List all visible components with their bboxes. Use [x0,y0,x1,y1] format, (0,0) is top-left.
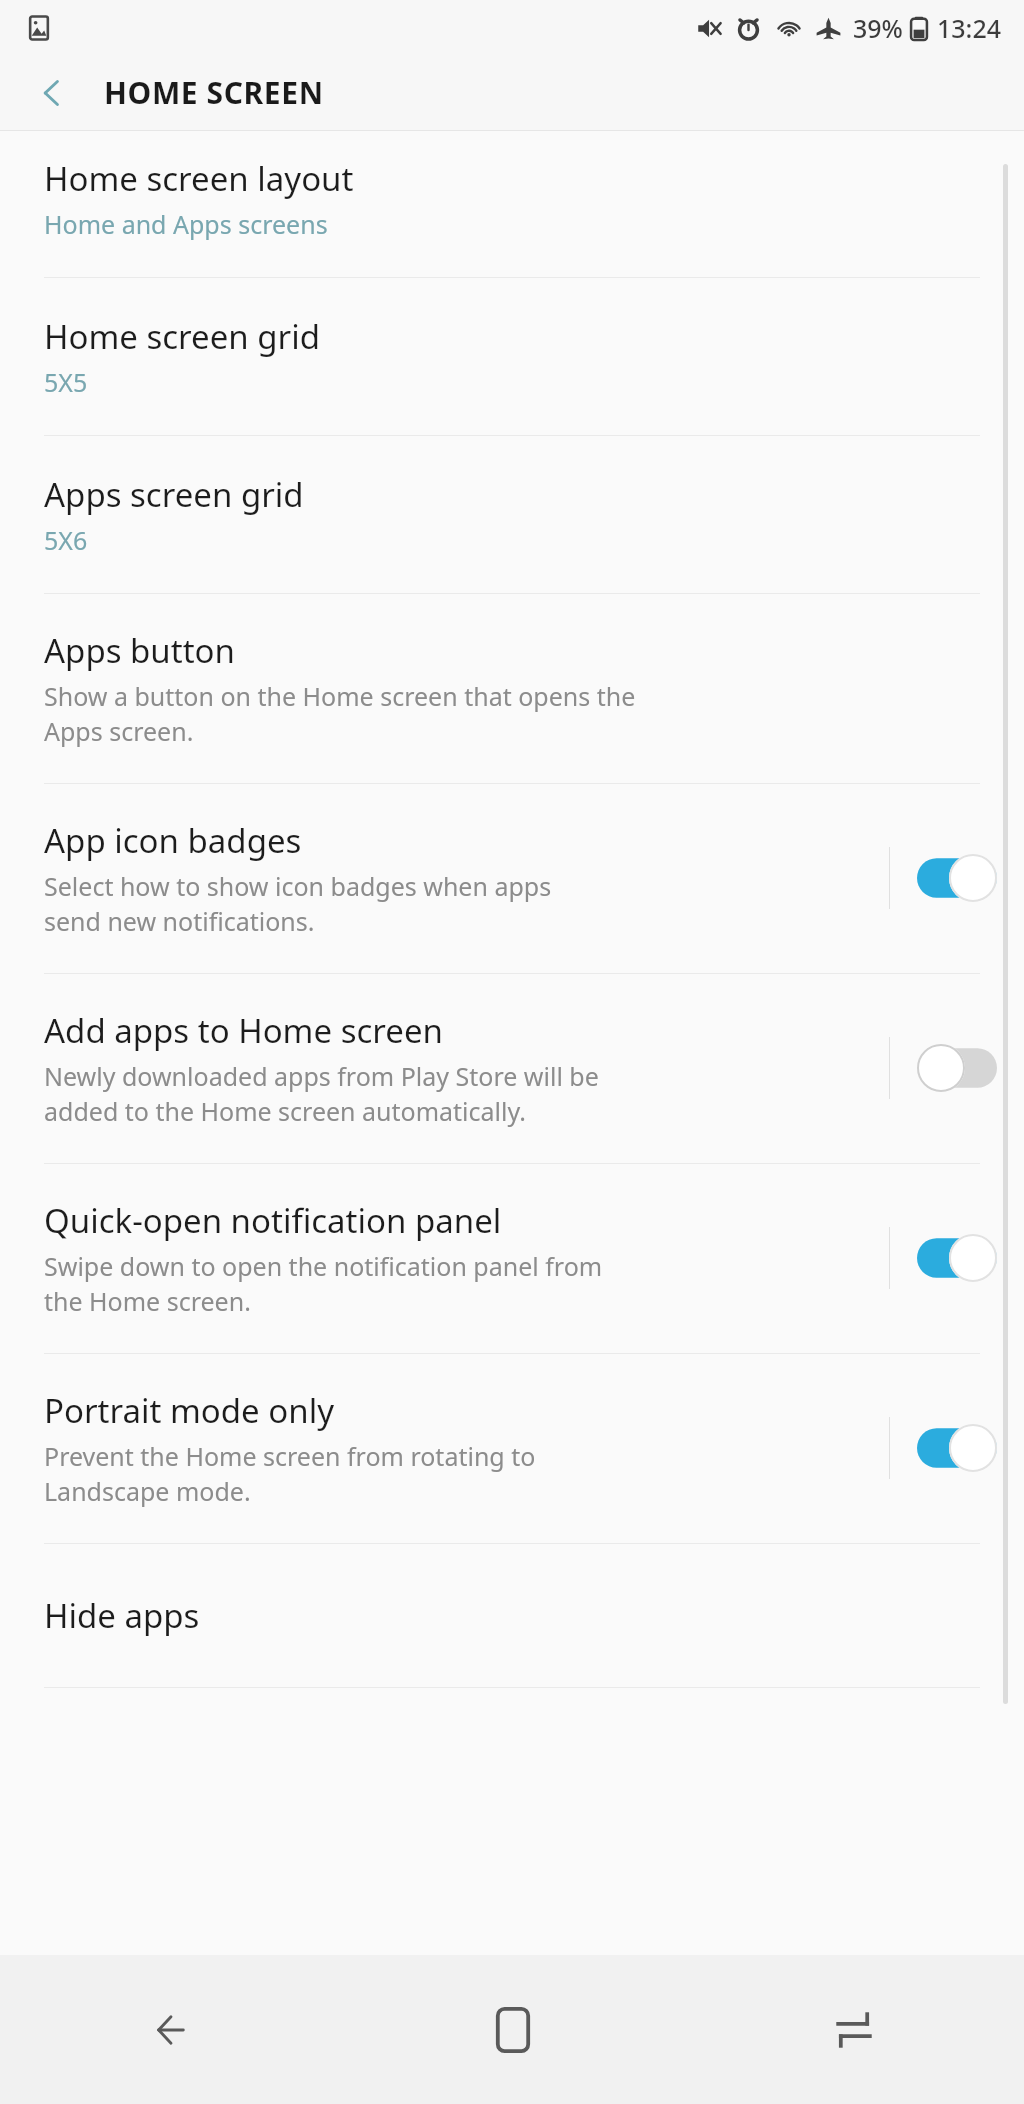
staticText: Home and Apps screens [44,207,328,241]
button[interactable]: Back [0,1955,342,2104]
button[interactable]: Quick-open notification panel [0,1175,1024,1341]
staticText: HOME SCREEN [104,72,324,113]
button[interactable]: On [890,795,1024,961]
staticText: 39% [853,11,903,45]
button[interactable]: Recents [683,1955,1024,2104]
staticText: Hide apps [44,1593,200,1638]
button[interactable]: Home [342,1955,683,2104]
staticText: Portrait mode only [44,1388,334,1433]
staticText: Apps button [44,628,235,673]
staticText: Show a button on the Home screen that op… [44,679,636,749]
button[interactable]: Portrait mode only [0,1365,1024,1531]
button[interactable]: On [890,1365,1024,1531]
staticText: App icon badges [44,818,302,863]
button[interactable]: Back [0,55,104,130]
staticText: Newly downloaded apps from Play Store wi… [44,1059,599,1129]
button[interactable]: Home screen layout [0,131,1024,265]
staticText: Quick-open notification panel [44,1198,502,1243]
button[interactable]: Off [890,985,1024,1151]
staticText: 5X5 [44,365,88,399]
staticText: Home screen layout [44,156,354,201]
staticText: 5X6 [44,523,88,557]
staticText: Add apps to Home screen [44,1008,443,1053]
button[interactable]: Hide apps [0,1555,1024,1675]
button[interactable]: Apps screen grid [0,447,1024,581]
button[interactable]: On [890,1175,1024,1341]
staticText: Apps screen grid [44,472,304,517]
staticText: Prevent the Home screen from rotating to… [44,1439,536,1509]
staticText: Home screen grid [44,314,321,359]
button[interactable]: Home screen grid [0,289,1024,423]
staticText: Swipe down to open the notification pane… [44,1249,603,1319]
button[interactable]: Add apps to Home screen [0,985,1024,1151]
staticText: 13:24 [937,11,1002,45]
button[interactable]: App icon badges [0,795,1024,961]
button[interactable]: Apps button [0,605,1024,771]
staticText: Select how to show icon badges when apps… [44,869,552,939]
